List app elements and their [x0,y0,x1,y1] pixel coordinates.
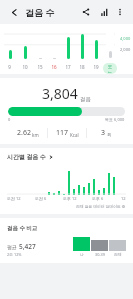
staticText: 오늘 [106,64,114,73]
button[interactable]: 9 [2,24,17,71]
staticText: 117 [56,128,69,138]
staticText: 19 [93,64,99,70]
staticText: 걸음 [80,96,91,103]
button[interactable]: 17 [61,24,75,71]
button[interactable]: 18 [75,24,89,71]
button[interactable]: 3 [87,128,125,138]
button[interactable]: 시간별 걸음 수 [7,153,126,161]
button[interactable]: Chart [96,4,112,20]
staticText: 18 [79,64,85,70]
staticText: 5,427 [19,242,36,251]
staticText: 평균 [7,244,19,251]
button[interactable]: 16 [47,24,61,71]
staticText: 목표 6,000 [105,117,125,122]
button[interactable]: 19 [89,24,103,71]
staticText: 30-39 [95,252,105,257]
staticText: 10 [22,64,28,70]
button[interactable]: 2.62 [8,128,47,138]
button[interactable]: Back [6,4,22,20]
staticText: 나 [80,252,84,257]
button[interactable]: 117 [48,128,86,138]
button[interactable]: 15 [32,24,47,71]
staticText: 전체 [114,252,122,257]
staticText: 2,000 [120,47,131,52]
staticText: 16 [51,64,57,70]
staticText: 4,000 [120,36,131,41]
staticText: Kcal [70,132,79,138]
button[interactable] [8,107,125,116]
staticText: 오전 12 [7,196,35,201]
staticText: 전체 걸음 데이터 업데이트 중 [76,204,126,209]
staticText: 오전 6 [35,196,63,201]
staticText: 걸음 수 [25,6,55,18]
staticText: 2.62 [17,128,31,138]
staticText: 3 [101,128,106,138]
button[interactable]: 오늘 [103,24,117,74]
staticText: 17 [65,64,71,70]
staticText: 9 [8,64,11,70]
staticText: 0 [8,117,11,122]
staticText: 15 [37,64,43,70]
button[interactable]: More options [113,5,127,19]
staticText: 오후 12 [63,196,92,201]
staticText: km [32,132,39,138]
staticText: 시간별 걸음 수 [7,153,47,161]
button[interactable] [7,167,126,195]
button[interactable]: Share [78,4,94,20]
button[interactable]: 10 [17,24,32,71]
staticText: 회 [107,132,112,138]
button[interactable]: 걸음 수 비교 [7,224,126,257]
staticText: 12 [121,196,126,201]
staticText: 걸음 수 비교 [7,224,38,232]
staticText: 오후 6 [92,196,121,201]
staticText: 2주 12% [7,252,22,257]
staticText: 3,804 [42,84,78,103]
